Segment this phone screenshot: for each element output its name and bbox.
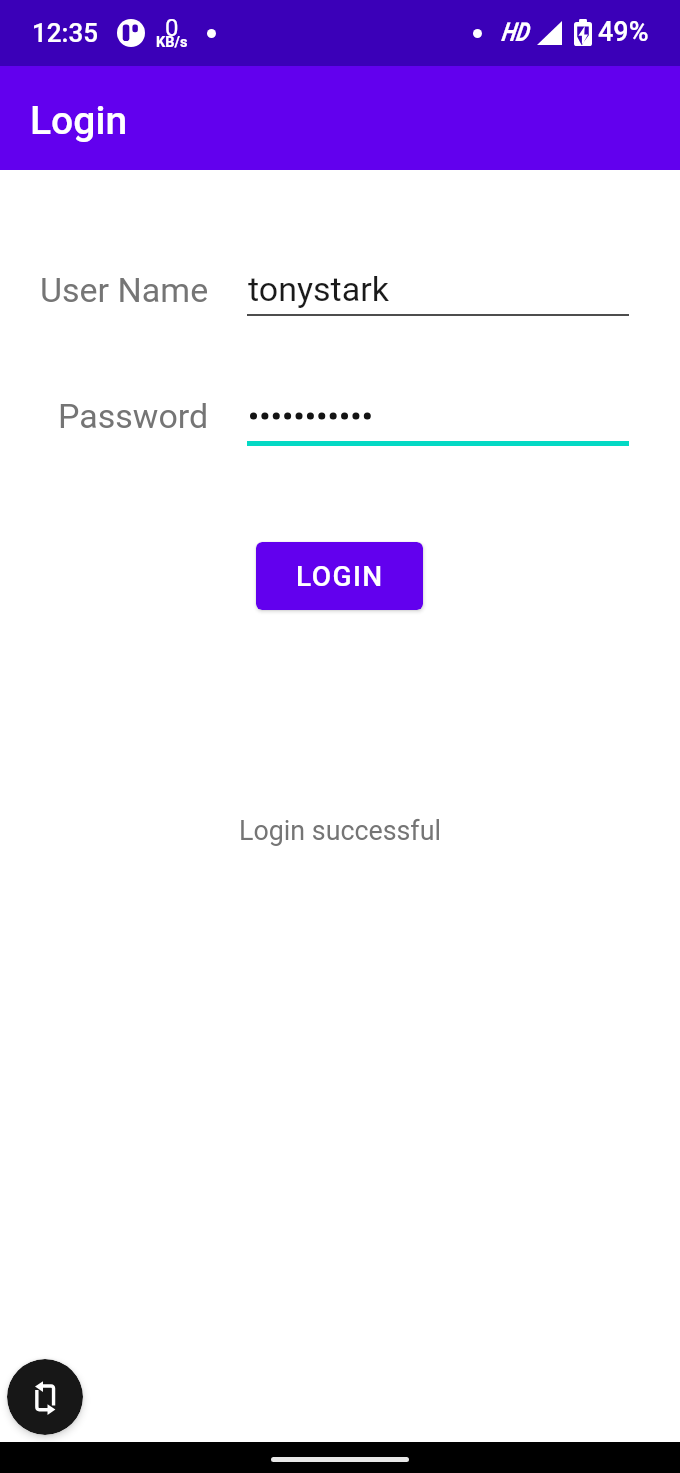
button[interactable]: Rotate screen	[7, 1359, 83, 1435]
staticText: HD	[501, 17, 529, 47]
staticText: Password	[58, 396, 209, 436]
button[interactable]: LOGIN	[256, 542, 423, 610]
staticText: User Name	[40, 270, 209, 310]
staticText: Login	[30, 98, 128, 144]
staticText: tonystark	[248, 269, 389, 309]
staticText: KB/s	[156, 34, 188, 51]
staticText: LOGIN	[296, 560, 384, 593]
staticText: 12:35	[32, 18, 99, 48]
button[interactable]: tonystark	[247, 258, 629, 316]
staticText: 0	[165, 14, 179, 42]
button[interactable]	[247, 384, 629, 446]
staticText: Login successful	[0, 815, 680, 846]
staticText: 49%	[598, 16, 649, 48]
